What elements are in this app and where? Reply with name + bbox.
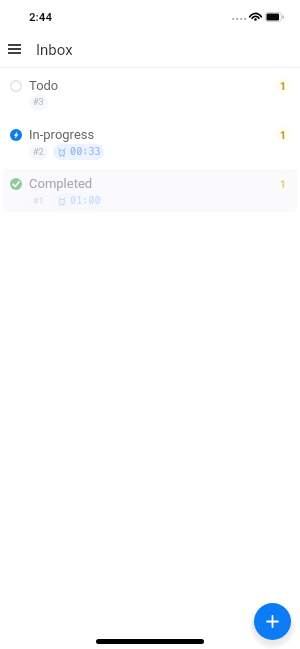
staticText: Completed [29, 176, 93, 191]
staticText: #1 [33, 196, 44, 207]
staticText: 1 [280, 178, 287, 190]
button[interactable]: In-progress [0, 117, 300, 166]
staticText: 00:33 [70, 146, 101, 158]
button[interactable]: Completed [0, 166, 300, 215]
staticText: In-progress [29, 127, 95, 142]
staticText: Inbox [36, 41, 73, 59]
button[interactable]: Todo [0, 68, 300, 117]
staticText: #2 [33, 147, 44, 158]
staticText: 01:00 [70, 195, 101, 207]
button[interactable]: Menu [0, 34, 29, 67]
staticText: Todo [29, 78, 59, 93]
button[interactable]: Add task [254, 603, 291, 640]
staticText: 1 [280, 129, 287, 141]
staticText: #3 [33, 97, 44, 108]
staticText: 1 [280, 80, 287, 92]
staticText: 2:44 [29, 10, 53, 23]
